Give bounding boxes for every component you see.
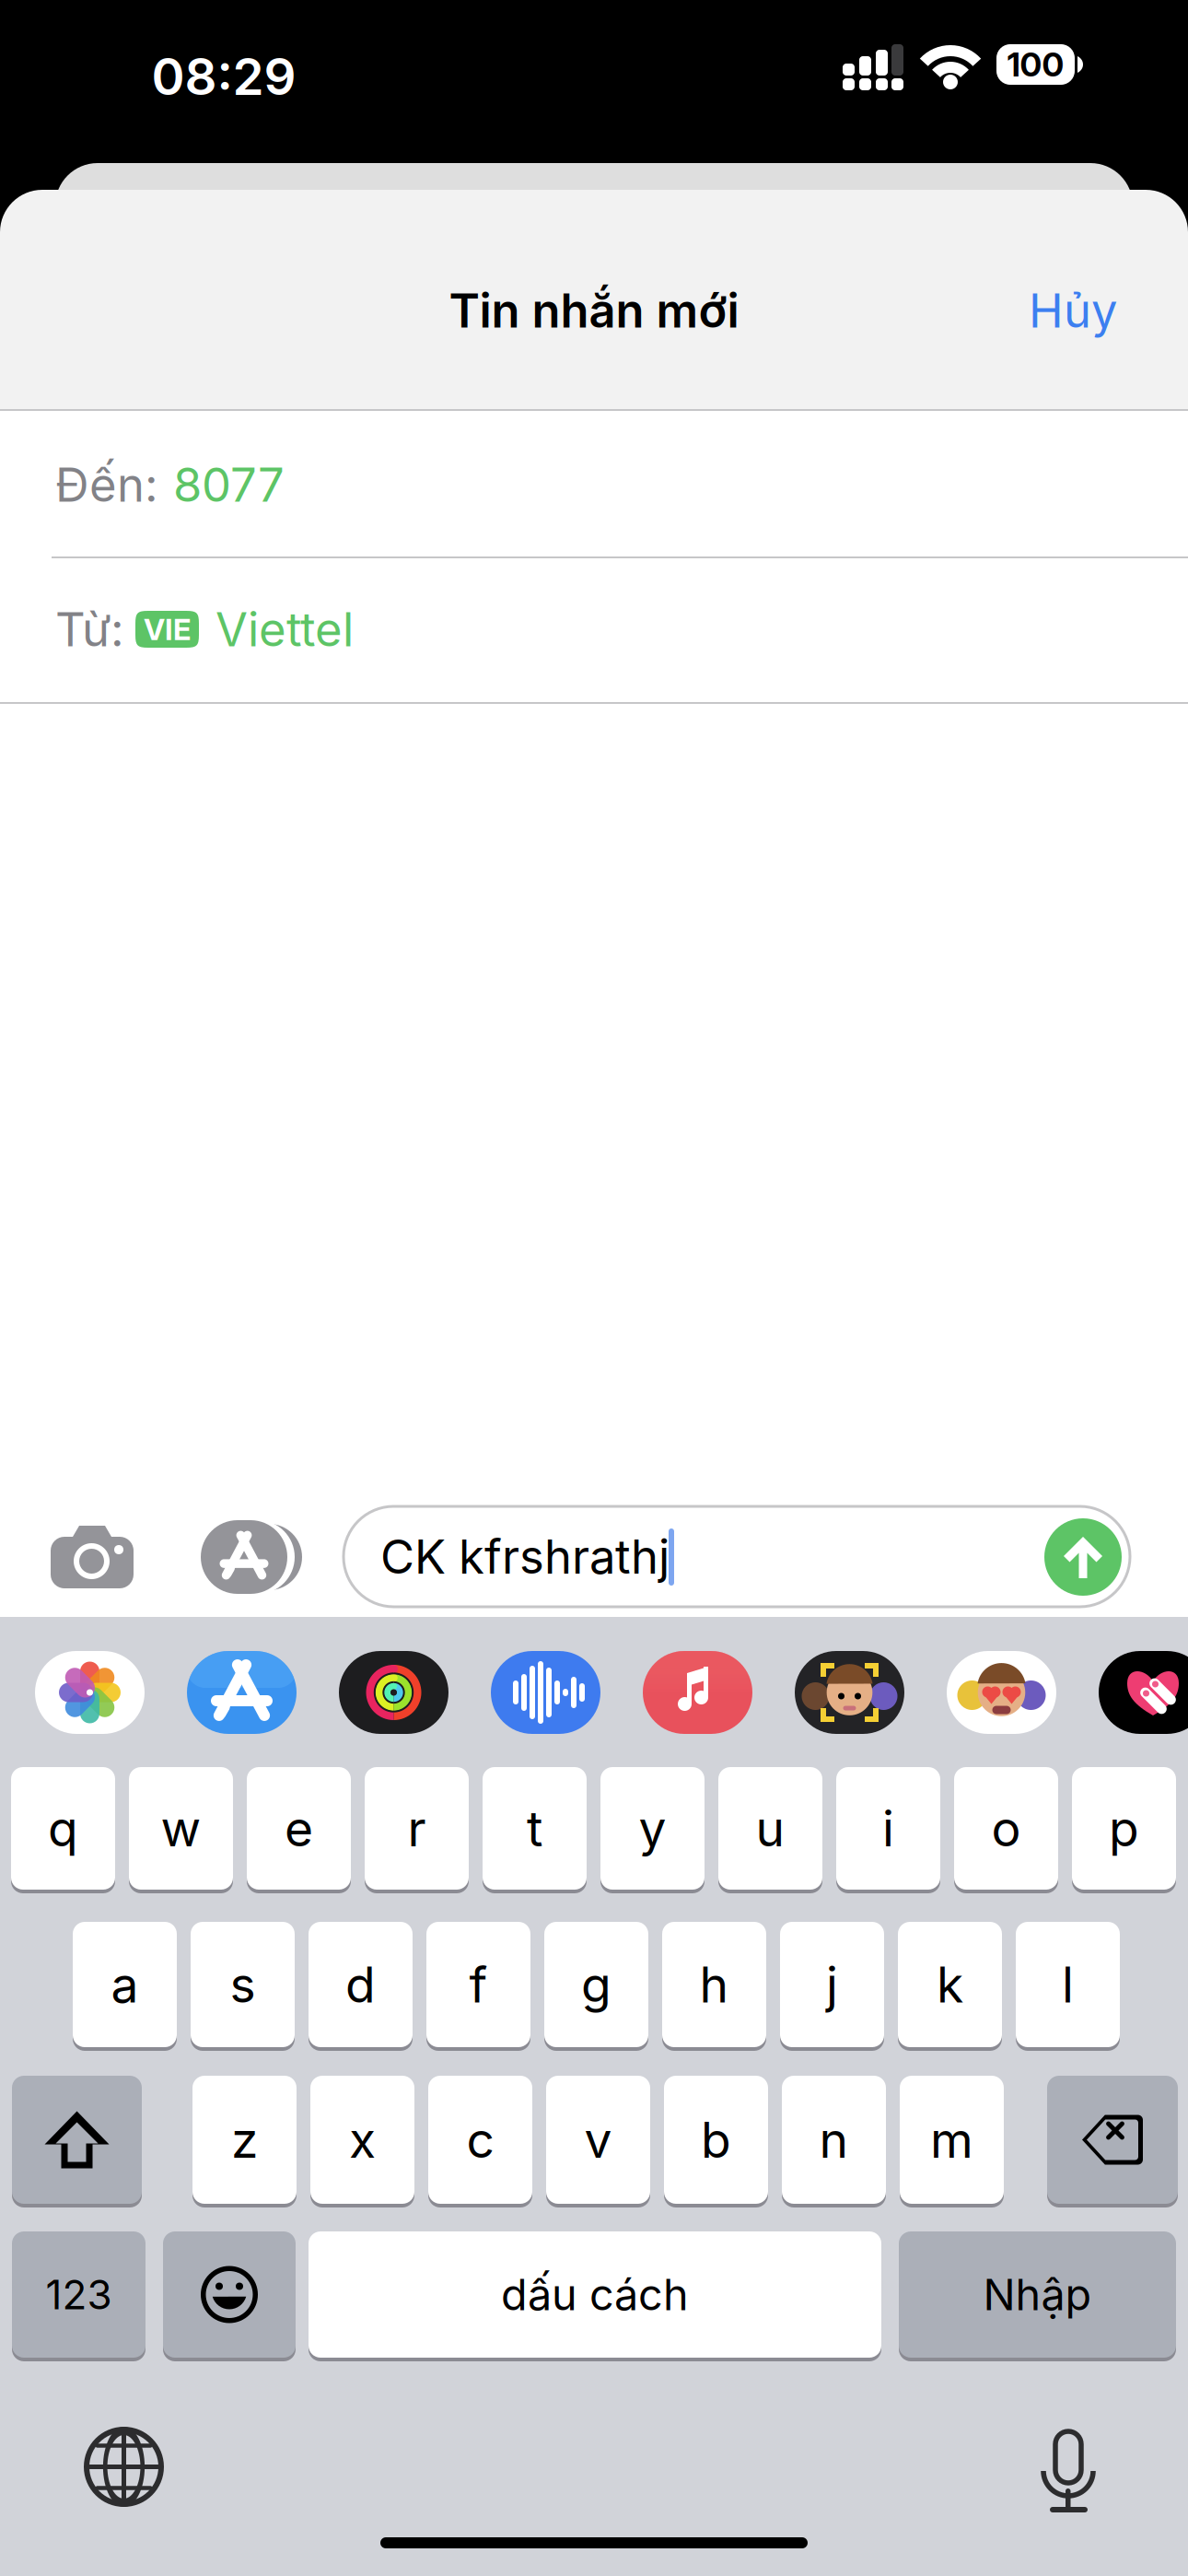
staticText: 8077 <box>173 457 285 512</box>
staticText: g <box>581 1955 611 2013</box>
button[interactable]: e <box>247 1765 351 1891</box>
button[interactable]: Next keyboard <box>85 2428 163 2506</box>
staticText: dấu cách <box>501 2269 689 2320</box>
button[interactable]: t <box>483 1765 587 1891</box>
button[interactable]: p <box>1072 1765 1176 1891</box>
staticText: w <box>161 1799 201 1857</box>
button[interactable]: Health <box>1099 1651 1188 1734</box>
staticText: s <box>230 1955 256 2013</box>
staticText: Viettel <box>215 602 354 657</box>
button[interactable]: dấu cách <box>309 2230 881 2359</box>
staticText: CK kfrshrathj <box>380 1529 670 1584</box>
staticText: q <box>48 1799 78 1857</box>
button[interactable]: u <box>718 1765 822 1891</box>
button[interactable]: o <box>954 1765 1058 1891</box>
staticText: c <box>466 2111 494 2169</box>
button[interactable]: f <box>426 1920 530 2049</box>
button[interactable]: Emoji <box>163 2230 296 2359</box>
staticText: Từ: <box>55 602 124 657</box>
staticText: d <box>345 1955 376 2013</box>
button[interactable]: Memoji <box>795 1651 904 1734</box>
staticText: p <box>1109 1799 1139 1857</box>
staticText: z <box>231 2111 258 2169</box>
button[interactable]: w <box>129 1765 233 1891</box>
button[interactable]: z <box>192 2074 297 2206</box>
button[interactable]: v <box>546 2074 650 2206</box>
button[interactable]: Apps <box>192 1520 296 1594</box>
staticText: u <box>756 1799 785 1857</box>
button[interactable]: Voice Memos <box>491 1651 600 1734</box>
button[interactable]: n <box>782 2074 886 2206</box>
button[interactable]: Delete <box>1047 2074 1178 2206</box>
staticText: Đến: <box>55 457 158 512</box>
staticText: b <box>701 2111 731 2169</box>
staticText: v <box>584 2111 612 2169</box>
staticText: 100 <box>1007 45 1064 84</box>
staticText: 08:29 <box>151 47 296 106</box>
button[interactable]: g <box>544 1920 648 2049</box>
button[interactable]: q <box>11 1765 115 1891</box>
button[interactable]: App Store <box>187 1651 297 1734</box>
staticText: n <box>819 2111 849 2169</box>
staticText: l <box>1062 1955 1074 2013</box>
staticText: t <box>527 1799 542 1857</box>
staticText: j <box>826 1955 838 2013</box>
staticText: k <box>937 1955 963 2013</box>
button[interactable]: Fitness <box>339 1651 448 1734</box>
button[interactable]: s <box>191 1920 295 2049</box>
staticText: Hủy <box>1029 283 1117 338</box>
staticText: r <box>408 1799 426 1857</box>
staticText: Tin nhắn mới <box>449 283 739 338</box>
staticText: a <box>111 1955 139 2013</box>
button[interactable]: r <box>365 1765 469 1891</box>
staticText: VIE <box>144 612 191 647</box>
button[interactable]: Hủy <box>995 260 1151 361</box>
button[interactable]: Nhập <box>899 2230 1176 2359</box>
button[interactable]: b <box>664 2074 768 2206</box>
button[interactable]: c <box>428 2074 532 2206</box>
staticText: f <box>469 1955 488 2013</box>
button[interactable]: y <box>600 1765 705 1891</box>
button[interactable]: Camera <box>51 1525 134 1589</box>
button[interactable]: l <box>1016 1920 1120 2049</box>
staticText: i <box>882 1799 894 1857</box>
staticText: e <box>285 1799 313 1857</box>
button[interactable]: i <box>836 1765 940 1891</box>
button[interactable]: 123 <box>12 2230 146 2359</box>
staticText: o <box>991 1799 1021 1857</box>
button[interactable]: h <box>662 1920 766 2049</box>
button[interactable]: k <box>898 1920 1002 2049</box>
staticText: Nhập <box>983 2269 1092 2320</box>
staticText: m <box>930 2111 973 2169</box>
staticText: 123 <box>46 2271 112 2318</box>
button[interactable]: Music <box>643 1651 752 1734</box>
staticText: x <box>349 2111 376 2169</box>
button[interactable]: m <box>900 2074 1004 2206</box>
button[interactable]: Memoji Stickers <box>947 1651 1056 1734</box>
button[interactable]: a <box>73 1920 177 2049</box>
button[interactable]: Dictation <box>1042 2431 1096 2512</box>
staticText: h <box>699 1955 729 2013</box>
button[interactable]: Photos <box>35 1651 145 1734</box>
button[interactable]: x <box>310 2074 414 2206</box>
button[interactable]: Shift <box>12 2074 142 2206</box>
button[interactable]: j <box>780 1920 884 2049</box>
staticText: y <box>639 1799 666 1857</box>
button[interactable]: d <box>309 1920 413 2049</box>
